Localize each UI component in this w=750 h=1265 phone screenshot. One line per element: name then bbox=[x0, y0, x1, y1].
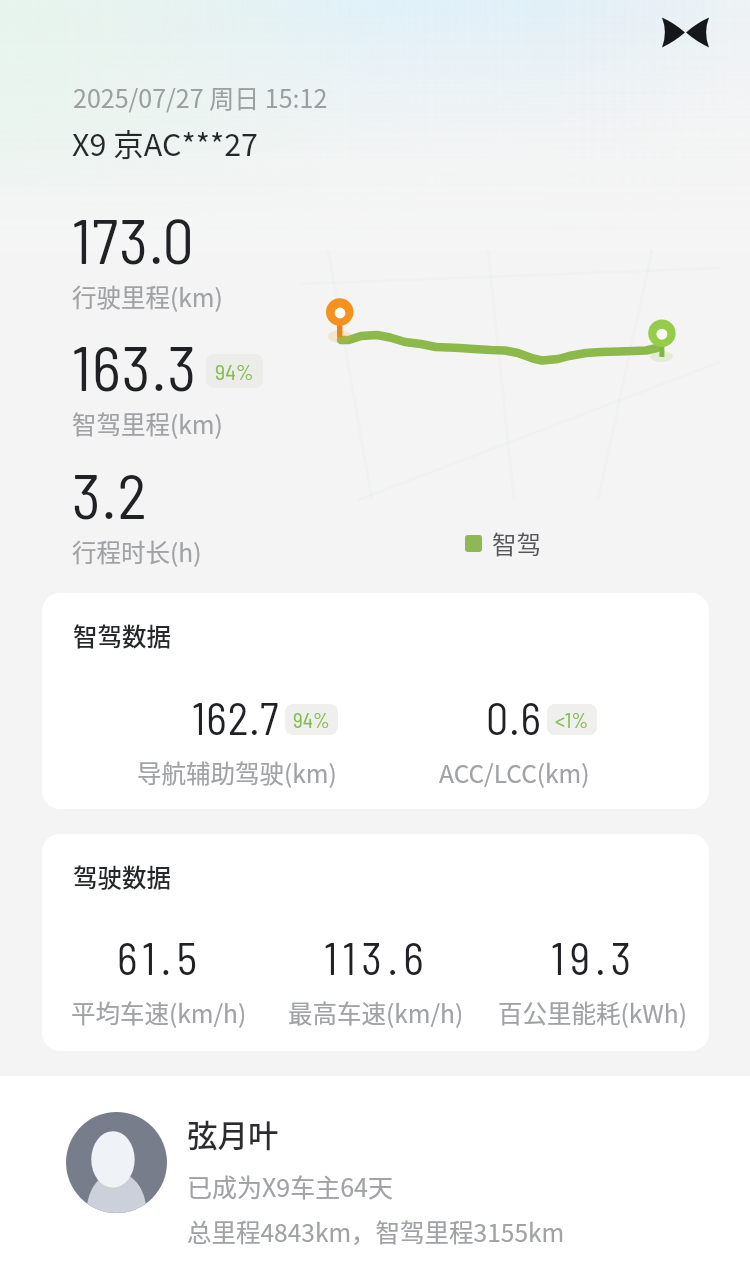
staticText: 162.7 bbox=[192, 691, 280, 744]
staticText: 总里程4843km，智驾里程3155km bbox=[187, 1214, 565, 1249]
staticText: 173.0 bbox=[72, 202, 195, 276]
staticText: 平均车速(km/h) bbox=[71, 995, 247, 1030]
button[interactable]: 智驾数据 bbox=[42, 593, 709, 809]
button[interactable]: 智驾 bbox=[465, 526, 541, 561]
staticText: 弦月叶 bbox=[187, 1112, 279, 1156]
button[interactable]: XPeng logo bbox=[662, 17, 709, 48]
button[interactable]: 弦月叶 bbox=[66, 1112, 565, 1249]
staticText: 163.3 bbox=[72, 329, 198, 403]
staticText: 94% bbox=[293, 707, 330, 732]
staticText: 最高车速(km/h) bbox=[288, 995, 464, 1030]
button[interactable]: 驾驶数据 bbox=[42, 834, 709, 1051]
staticText: 19.3 bbox=[551, 931, 637, 984]
staticText: 3.2 bbox=[72, 457, 148, 531]
staticText: 百公里能耗(kWh) bbox=[498, 995, 687, 1030]
staticText: 驾驶数据 bbox=[73, 859, 171, 894]
staticText: 智驾 bbox=[492, 526, 541, 561]
staticText: 智驾里程(km) bbox=[72, 406, 223, 441]
staticText: 行驶里程(km) bbox=[72, 279, 223, 314]
staticText: 0.6 bbox=[486, 691, 542, 744]
staticText: 已成为X9车主64天 bbox=[187, 1168, 393, 1204]
staticText: 61.5 bbox=[117, 931, 203, 984]
staticText: 2025/07/27 周日 15:12 bbox=[73, 79, 328, 115]
staticText: 行程时长(h) bbox=[72, 534, 202, 569]
staticText: 94% bbox=[215, 358, 254, 384]
staticText: <1% bbox=[555, 707, 589, 732]
staticText: 113.6 bbox=[324, 931, 430, 984]
staticText: ACC/LCC(km) bbox=[439, 755, 590, 790]
staticText: 导航辅助驾驶(km) bbox=[137, 755, 337, 790]
staticText: X9 京AC***27 bbox=[72, 121, 258, 165]
staticText: 智驾数据 bbox=[73, 618, 171, 653]
